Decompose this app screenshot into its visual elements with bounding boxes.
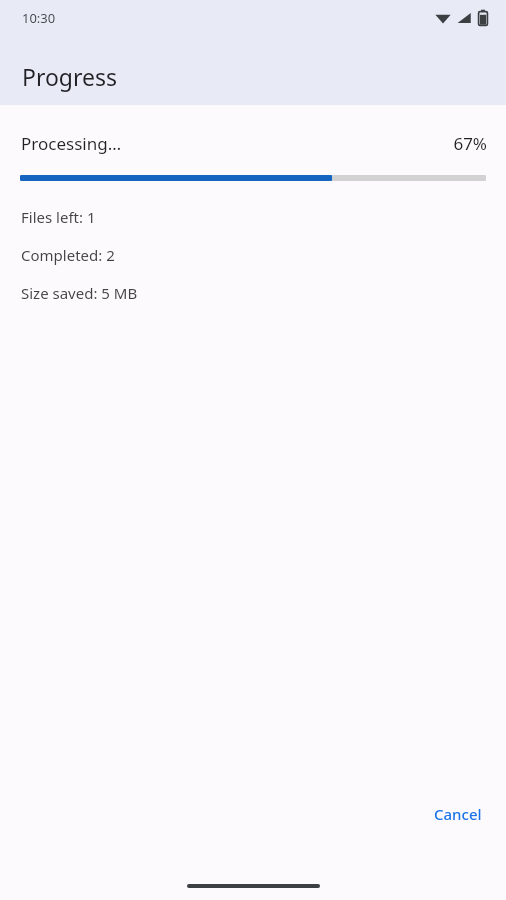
staticText: 67% (453, 132, 487, 155)
button[interactable]: Cancel (422, 796, 494, 832)
other: Mobile signal (456, 10, 472, 26)
staticText: Cancel (434, 804, 482, 824)
staticText: 10:30 (22, 9, 56, 27)
staticText: Files left: 1 (21, 207, 96, 227)
staticText: Progress (22, 61, 118, 92)
other: Battery (478, 9, 488, 26)
staticText: Completed: 2 (21, 245, 115, 265)
other: Wi-Fi (435, 10, 451, 26)
staticText: Size saved: 5 MB (21, 283, 138, 303)
staticText: Processing… (21, 132, 122, 155)
